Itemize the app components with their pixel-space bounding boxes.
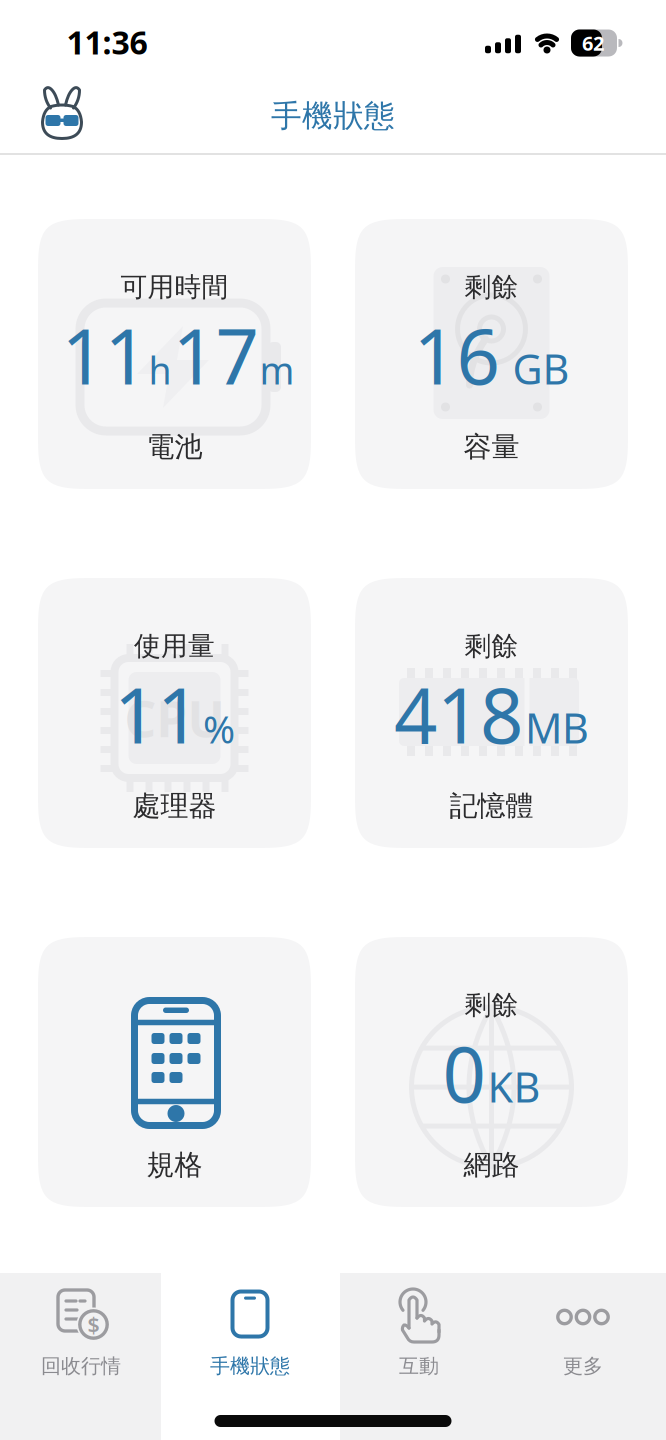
button[interactable]: 剩餘	[355, 937, 628, 1207]
staticText: 容量	[463, 430, 519, 464]
staticText: m	[259, 345, 294, 395]
button[interactable]: 規格	[38, 937, 311, 1207]
staticText: 處理器	[132, 789, 216, 823]
staticText: KB	[487, 1059, 540, 1114]
staticText: 電池	[146, 430, 202, 464]
staticText: 手機狀態	[271, 97, 395, 135]
staticText: 剩餘	[464, 271, 518, 303]
staticText: 剩餘	[464, 989, 518, 1021]
staticText: %	[203, 703, 235, 754]
staticText: 回收行情	[41, 1354, 121, 1378]
staticText: 418	[394, 663, 523, 764]
staticText: 可用時間	[120, 271, 228, 303]
staticText: 互動	[399, 1354, 439, 1378]
staticText: 16	[413, 304, 499, 405]
staticText: MB	[525, 700, 589, 755]
staticText: 11:36	[66, 21, 147, 63]
staticText: 網路	[463, 1148, 519, 1182]
staticText: 記憶體	[449, 789, 533, 823]
staticText: 手機狀態	[210, 1354, 290, 1378]
staticText: 62	[582, 30, 604, 56]
staticText: $	[87, 1310, 99, 1339]
staticText: 使用量	[134, 630, 215, 662]
staticText: 0	[442, 1022, 485, 1123]
button[interactable]: 剩餘	[355, 219, 628, 489]
button[interactable]: $	[0, 1273, 161, 1440]
staticText: 更多	[563, 1354, 603, 1378]
button[interactable]: 剩餘	[355, 578, 628, 848]
staticText: 剩餘	[464, 630, 518, 662]
staticText: 11	[61, 304, 147, 405]
staticText: h	[148, 345, 171, 395]
staticText: GB	[512, 341, 569, 396]
button[interactable]: CPU	[38, 578, 311, 848]
button[interactable]: 首頁	[38, 85, 86, 143]
staticText: 規格	[146, 1148, 202, 1182]
button[interactable]: 互動	[340, 1273, 500, 1440]
staticText: 11	[114, 663, 200, 764]
button[interactable]: 可用時間	[38, 219, 311, 489]
button[interactable]: 手機狀態	[161, 1273, 340, 1440]
button[interactable]: 更多	[500, 1273, 666, 1440]
staticText: CPU	[124, 685, 224, 751]
staticText: 17	[172, 304, 258, 405]
